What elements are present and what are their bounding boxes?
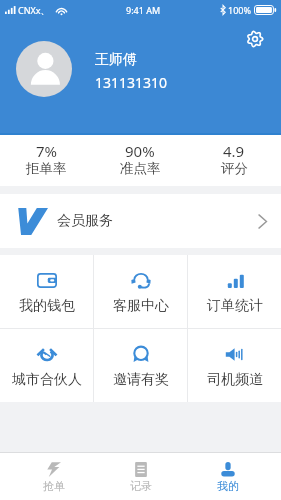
button[interactable]: 订单统计 <box>188 255 281 328</box>
button[interactable]: 记录 <box>97 453 184 500</box>
staticText: 邀请有奖 <box>113 371 169 389</box>
staticText: 100% <box>228 4 251 16</box>
button[interactable]: 我的钱包 <box>0 255 93 328</box>
button[interactable]: 城市合伙人 <box>0 329 93 402</box>
staticText: 7% <box>36 141 58 161</box>
button[interactable]: 我的 <box>184 453 271 500</box>
staticText: 准点率 <box>120 160 161 177</box>
staticText: 90% <box>125 141 155 161</box>
staticText: 4.9 <box>223 141 245 161</box>
staticText: 我的 <box>217 479 239 493</box>
button[interactable]: 客服中心 <box>94 255 187 328</box>
staticText: 记录 <box>130 479 152 493</box>
staticText: 城市合伙人 <box>12 371 82 389</box>
staticText: 王师傅 <box>95 51 137 69</box>
staticText: 订单统计 <box>207 297 263 315</box>
staticText: 客服中心 <box>113 297 169 315</box>
button[interactable]: 邀请有奖 <box>94 329 187 402</box>
button[interactable]: Settings <box>244 28 266 50</box>
staticText: 会员服务 <box>57 212 113 230</box>
staticText: 9:41 AM <box>126 4 161 16</box>
staticText: 拒单率 <box>26 160 67 177</box>
button[interactable]: 90% <box>93 135 187 186</box>
staticText: 评分 <box>221 160 248 177</box>
staticText: 我的钱包 <box>19 297 75 315</box>
button[interactable]: 4.9 <box>187 135 281 186</box>
staticText: 司机频道 <box>207 371 263 389</box>
staticText: 抢单 <box>43 479 65 493</box>
button[interactable]: 7% <box>0 135 93 186</box>
staticText: 131131310 <box>95 73 168 92</box>
button[interactable]: 会员服务 <box>0 194 281 248</box>
staticText: CNXx、 <box>18 4 50 16</box>
button[interactable]: 抢单 <box>10 453 97 500</box>
button[interactable]: 司机频道 <box>188 329 281 402</box>
